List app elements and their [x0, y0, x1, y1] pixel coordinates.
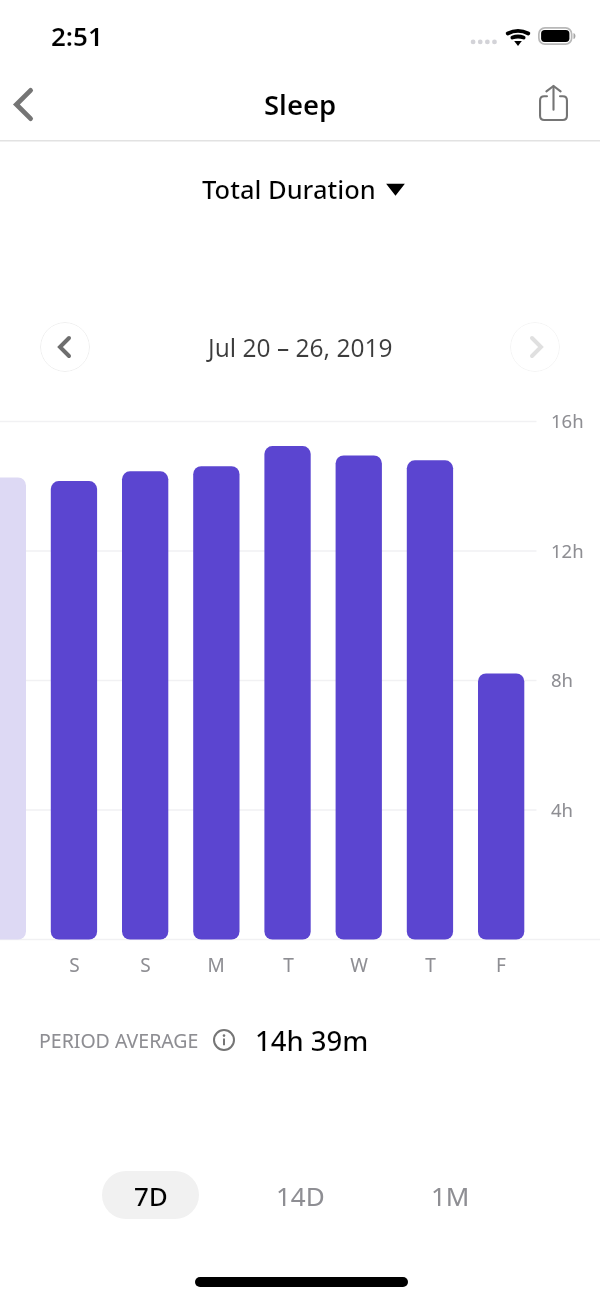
button[interactable]: Next week: [510, 322, 560, 372]
staticText: Total Duration: [202, 172, 376, 207]
button[interactable]: Share: [534, 70, 600, 140]
button[interactable]: 14D: [252, 1171, 349, 1219]
staticText: W: [350, 952, 368, 978]
staticText: Jul 20 – 26, 2019: [208, 331, 393, 364]
staticText: S: [69, 952, 80, 978]
staticText: 16h: [551, 408, 584, 433]
staticText: 1M: [431, 1178, 470, 1213]
button[interactable]: 1M: [402, 1171, 499, 1219]
staticText: 14D: [276, 1178, 325, 1213]
button[interactable]: Info: [210, 1026, 238, 1054]
staticText: M: [207, 952, 225, 978]
staticText: 8h: [551, 667, 574, 692]
staticText: Sleep: [264, 86, 337, 123]
button[interactable]: Back: [0, 70, 56, 140]
staticText: S: [140, 952, 151, 978]
staticText: T: [425, 952, 436, 978]
staticText: 14h 39m: [255, 1022, 369, 1059]
staticText: 2:51: [51, 18, 103, 53]
staticText: 4h: [551, 797, 574, 822]
staticText: T: [283, 952, 294, 978]
staticText: 7D: [134, 1178, 168, 1213]
button[interactable]: Previous week: [40, 322, 90, 372]
staticText: PERIOD AVERAGE: [39, 1027, 199, 1054]
button[interactable]: Total Duration: [192, 166, 414, 213]
button[interactable]: 7D: [102, 1171, 199, 1219]
staticText: 12h: [551, 538, 584, 563]
staticText: F: [496, 952, 506, 978]
